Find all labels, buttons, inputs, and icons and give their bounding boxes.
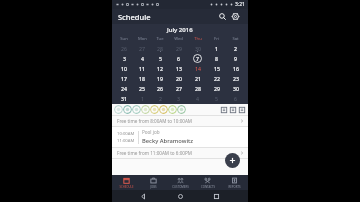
button[interactable]: Free time from 8:00AM to 10:00AM <box>112 116 248 126</box>
staticText: 13 <box>176 65 182 72</box>
staticText: 27 <box>139 45 145 52</box>
staticText: 12 <box>157 65 163 72</box>
button[interactable]: 30 <box>188 43 207 53</box>
button[interactable]: 11 <box>133 63 151 73</box>
button[interactable]: JOBS <box>140 175 167 190</box>
staticText: REPORTS <box>228 185 241 189</box>
button[interactable]: 4 <box>188 93 207 103</box>
button[interactable]: Free time from 11:00AM to 6:00PM <box>112 148 248 158</box>
button[interactable]: 6 <box>226 93 245 103</box>
button[interactable]: 17 <box>115 73 133 83</box>
staticText: 2 <box>159 95 162 102</box>
button[interactable]: Search <box>216 10 229 23</box>
button[interactable]: Filter <box>123 105 132 114</box>
button[interactable]: Back <box>138 191 149 202</box>
staticText: SCHEDULE <box>119 185 134 189</box>
button[interactable]: Action 0 <box>219 105 228 114</box>
staticText: 8 <box>215 55 218 62</box>
button[interactable]: 22 <box>207 73 226 83</box>
staticText: 21 <box>195 75 201 82</box>
button[interactable]: Filter <box>168 105 177 114</box>
staticText: Wed <box>174 36 183 42</box>
button[interactable]: 3 <box>169 93 188 103</box>
button[interactable]: Filter <box>132 105 141 114</box>
button[interactable]: Filter <box>141 105 150 114</box>
staticText: Tue <box>156 36 164 42</box>
staticText: 23 <box>233 75 239 82</box>
staticText: 7 <box>196 55 199 62</box>
button[interactable]: 10:00AM <box>112 127 248 147</box>
staticText: 4 <box>196 95 199 102</box>
staticText: 1 <box>141 95 144 102</box>
button[interactable]: 13 <box>169 63 188 73</box>
button[interactable]: Add event <box>225 153 240 168</box>
button[interactable]: 2 <box>226 43 245 53</box>
button[interactable]: 15 <box>207 63 226 73</box>
button[interactable]: 28 <box>188 83 207 93</box>
staticText: 6 <box>177 55 180 62</box>
button[interactable]: 29 <box>169 43 188 53</box>
button[interactable]: 4 <box>133 53 151 63</box>
button[interactable]: 27 <box>169 83 188 93</box>
button[interactable]: CUSTOMERS <box>167 175 194 190</box>
button[interactable]: SCHEDULE <box>112 175 140 190</box>
button[interactable]: 8 <box>207 53 226 63</box>
button[interactable]: 31 <box>115 93 133 103</box>
staticText: 20 <box>176 75 182 82</box>
button[interactable]: 7 <box>188 53 207 63</box>
button[interactable]: 29 <box>207 83 226 93</box>
staticText: Fri <box>214 36 219 42</box>
button[interactable]: 16 <box>226 63 245 73</box>
button[interactable]: 1 <box>207 43 226 53</box>
button[interactable]: CONTACTS <box>194 175 221 190</box>
staticText: 1 <box>215 45 218 52</box>
button[interactable]: 21 <box>188 73 207 83</box>
button[interactable]: 12 <box>151 63 169 73</box>
staticText: Becky Abramowitz <box>142 137 193 145</box>
button[interactable]: Filter <box>177 105 186 114</box>
staticText: 18 <box>139 75 145 82</box>
staticText: 6 <box>234 95 237 102</box>
staticText: 14 <box>195 65 201 72</box>
button[interactable]: 2 <box>151 93 169 103</box>
button[interactable]: 20 <box>169 73 188 83</box>
button[interactable]: 1 <box>133 93 151 103</box>
staticText: 27 <box>176 85 182 92</box>
button[interactable]: 5 <box>151 53 169 63</box>
staticText: 26 <box>121 45 127 52</box>
button[interactable]: 25 <box>133 83 151 93</box>
button[interactable]: 19 <box>151 73 169 83</box>
button[interactable]: Settings <box>229 10 242 23</box>
button[interactable]: 9 <box>226 53 245 63</box>
staticText: 11 <box>139 65 145 72</box>
button[interactable]: Recents <box>211 191 222 202</box>
button[interactable]: 6 <box>169 53 188 63</box>
button[interactable]: 28 <box>151 43 169 53</box>
staticText: 19 <box>157 75 163 82</box>
button[interactable]: Action 2 <box>237 105 246 114</box>
button[interactable]: 30 <box>226 83 245 93</box>
button[interactable]: Filter <box>159 105 168 114</box>
staticText: 25 <box>139 85 145 92</box>
staticText: 10 <box>121 65 127 72</box>
staticText: 29 <box>214 85 220 92</box>
button[interactable]: Home <box>175 191 186 202</box>
staticText: CUSTOMERS <box>172 185 189 189</box>
staticText: 28 <box>157 45 163 52</box>
button[interactable]: 5 <box>207 93 226 103</box>
button[interactable]: 14 <box>188 63 207 73</box>
button[interactable]: 26 <box>151 83 169 93</box>
staticText: 16 <box>233 65 239 72</box>
button[interactable]: 27 <box>133 43 151 53</box>
button[interactable]: REPORTS <box>221 175 248 190</box>
button[interactable]: Filter <box>150 105 159 114</box>
button[interactable]: 3 <box>115 53 133 63</box>
button[interactable]: Action 1 <box>228 105 237 114</box>
button[interactable]: 24 <box>115 83 133 93</box>
staticText: 3 <box>177 95 180 102</box>
button[interactable]: 26 <box>115 43 133 53</box>
button[interactable]: 10 <box>115 63 133 73</box>
button[interactable]: 18 <box>133 73 151 83</box>
button[interactable]: 23 <box>226 73 245 83</box>
button[interactable]: Filter <box>114 105 123 114</box>
